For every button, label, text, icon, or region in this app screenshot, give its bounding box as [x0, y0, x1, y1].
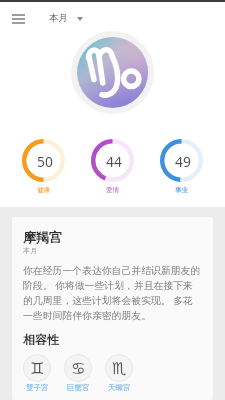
button[interactable]: ♋ — [64, 354, 92, 392]
staticText: ♏ — [112, 359, 127, 378]
staticText: 相容性 — [23, 332, 59, 347]
staticText: 健康 — [37, 186, 50, 194]
staticText: 44 — [106, 152, 122, 171]
button[interactable]: ♊ — [23, 354, 51, 392]
staticText: 摩羯宫 — [23, 229, 62, 245]
staticText: ♋ — [71, 359, 86, 378]
staticText: 本月 — [23, 246, 37, 255]
staticText: 事业 — [175, 186, 188, 194]
staticText: 爱情 — [106, 186, 119, 194]
button[interactable]: Capricorn — [77, 37, 148, 108]
staticText: 你在经历一个表达你自己并结识新朋友的阶段。 你将做一些计划，并且在接下来的几周里… — [23, 265, 202, 322]
button[interactable]: 本月 — [49, 2, 83, 34]
staticText: 49 — [175, 152, 191, 171]
staticText: 巨蟹宮 — [67, 383, 90, 392]
button[interactable]: ♏ — [105, 354, 133, 392]
staticText: 天蠍宮 — [108, 383, 131, 392]
staticText: 50 — [37, 152, 53, 171]
staticText: ♊ — [30, 359, 45, 378]
staticText: 雙子宮 — [26, 383, 49, 392]
button[interactable]: Menu — [0, 2, 36, 34]
staticText: 本月 — [49, 12, 68, 24]
